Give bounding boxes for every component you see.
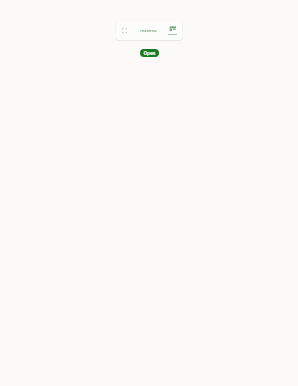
button[interactable]: Menu (120, 26, 129, 35)
button[interactable]: Menu (116, 21, 182, 40)
staticText: maxima (140, 28, 157, 33)
button[interactable]: Brand logo (167, 26, 178, 35)
staticText: Open (143, 50, 156, 56)
button[interactable]: Open (140, 49, 159, 57)
